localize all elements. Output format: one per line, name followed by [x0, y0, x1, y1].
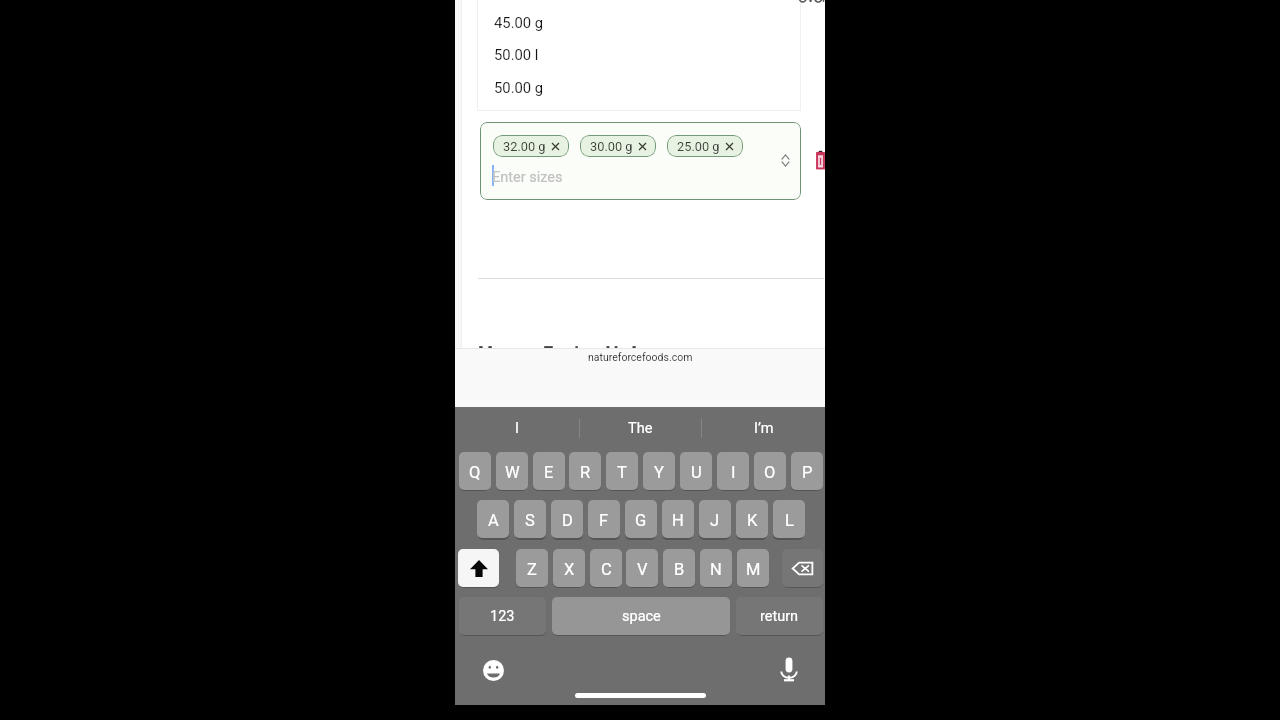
- button[interactable]: U: [680, 452, 712, 490]
- staticText: X: [564, 560, 575, 579]
- button[interactable]: 32.00 g: [493, 135, 569, 157]
- button[interactable]: F: [588, 500, 620, 538]
- staticText: B: [674, 560, 685, 579]
- staticText: R: [580, 463, 591, 482]
- button[interactable]: Q: [459, 452, 491, 490]
- button[interactable]: 50.00 g: [478, 74, 800, 100]
- staticText: P: [802, 463, 813, 482]
- button[interactable]: L: [773, 500, 805, 538]
- button[interactable]: The: [579, 407, 702, 450]
- staticText: K: [747, 511, 758, 530]
- button[interactable]: G: [625, 500, 657, 538]
- staticText: return: [760, 608, 799, 625]
- button[interactable]: K: [736, 500, 768, 538]
- button[interactable]: I’m: [702, 407, 825, 450]
- staticText: S: [525, 511, 535, 530]
- staticText: Z: [527, 560, 537, 579]
- button[interactable]: 123: [459, 597, 546, 635]
- staticText: The: [628, 420, 653, 437]
- staticText: space: [622, 608, 661, 625]
- staticText: F: [599, 511, 609, 530]
- button[interactable]: return: [736, 597, 823, 635]
- staticText: E: [544, 463, 554, 482]
- staticText: U: [691, 463, 702, 482]
- button[interactable]: O: [754, 452, 786, 490]
- button[interactable]: 32.00 g: [480, 122, 801, 200]
- staticText: G: [635, 511, 647, 530]
- staticText: 32.00 g: [503, 139, 546, 154]
- staticText: H: [672, 511, 684, 530]
- button[interactable]: Delete: [816, 150, 825, 170]
- staticText: 123: [490, 608, 515, 625]
- button[interactable]: space: [552, 597, 730, 635]
- staticText: J: [710, 511, 720, 530]
- button[interactable]: S: [514, 500, 546, 538]
- staticText: V: [637, 560, 648, 579]
- button[interactable]: R: [569, 452, 601, 490]
- staticText: L: [785, 511, 794, 530]
- staticText: Q: [469, 463, 481, 482]
- button[interactable]: C: [590, 549, 622, 587]
- button[interactable]: H: [662, 500, 694, 538]
- button[interactable]: Expand list: [774, 149, 796, 171]
- button[interactable]: P: [791, 452, 823, 490]
- button[interactable]: 50.00 l: [478, 41, 800, 67]
- staticText: A: [488, 511, 499, 530]
- button[interactable]: N: [700, 549, 732, 587]
- staticText: D: [562, 511, 573, 530]
- staticText: 25.00 g: [677, 139, 720, 154]
- button[interactable]: X: [553, 549, 585, 587]
- button[interactable]: T: [606, 452, 638, 490]
- staticText: Enter sizes: [492, 169, 563, 186]
- button[interactable]: B: [663, 549, 695, 587]
- button[interactable]: W: [496, 452, 528, 490]
- button[interactable]: D: [551, 500, 583, 538]
- staticText: 50.00 g: [494, 79, 544, 96]
- staticText: I: [731, 463, 736, 482]
- staticText: W: [505, 463, 520, 482]
- button[interactable]: Z: [516, 549, 548, 587]
- staticText: 50.00 l: [494, 46, 539, 63]
- button[interactable]: I: [717, 452, 749, 490]
- staticText: 45.00 g: [494, 14, 544, 31]
- staticText: I’m: [754, 420, 774, 437]
- staticText: 30.00 g: [590, 139, 633, 154]
- staticText: C: [601, 560, 612, 579]
- button[interactable]: 45.00 g: [478, 9, 800, 35]
- staticText: N: [710, 560, 722, 579]
- staticText: T: [617, 463, 627, 482]
- staticText: I: [515, 420, 519, 437]
- staticText: M: [746, 560, 761, 579]
- staticText: Y: [654, 463, 664, 482]
- button[interactable]: V: [626, 549, 658, 587]
- staticText: O: [764, 463, 776, 482]
- button[interactable]: I: [455, 407, 579, 450]
- button[interactable]: M: [737, 549, 769, 587]
- button[interactable]: E: [533, 452, 565, 490]
- button[interactable]: Y: [643, 452, 675, 490]
- button[interactable]: Backspace: [782, 549, 823, 587]
- button[interactable]: 25.00 g: [667, 135, 743, 157]
- button[interactable]: Shift: [458, 549, 499, 587]
- staticText: natureforcefoods.com: [588, 351, 693, 363]
- button[interactable]: Dictate: [780, 657, 798, 682]
- button[interactable]: A: [477, 500, 509, 538]
- button[interactable]: J: [699, 500, 731, 538]
- button[interactable]: Emoji: [483, 660, 504, 681]
- button[interactable]: 30.00 g: [580, 135, 656, 157]
